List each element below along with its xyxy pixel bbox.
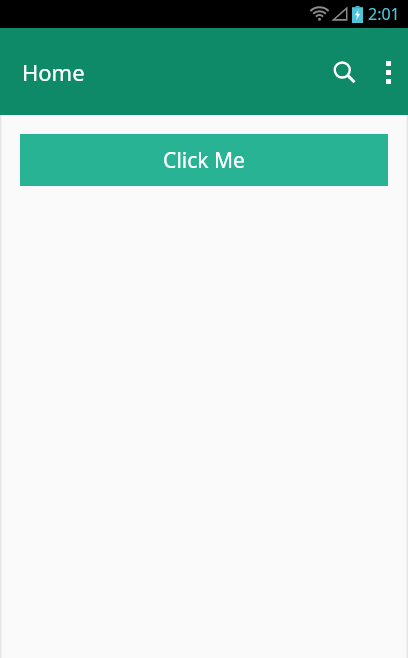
staticText: Click Me	[163, 146, 245, 175]
button[interactable]: Search	[320, 48, 368, 96]
staticText: Home	[22, 57, 85, 87]
staticText: 2:01	[368, 3, 400, 25]
button[interactable]: More options	[368, 48, 408, 96]
button[interactable]: Click Me	[20, 134, 388, 186]
